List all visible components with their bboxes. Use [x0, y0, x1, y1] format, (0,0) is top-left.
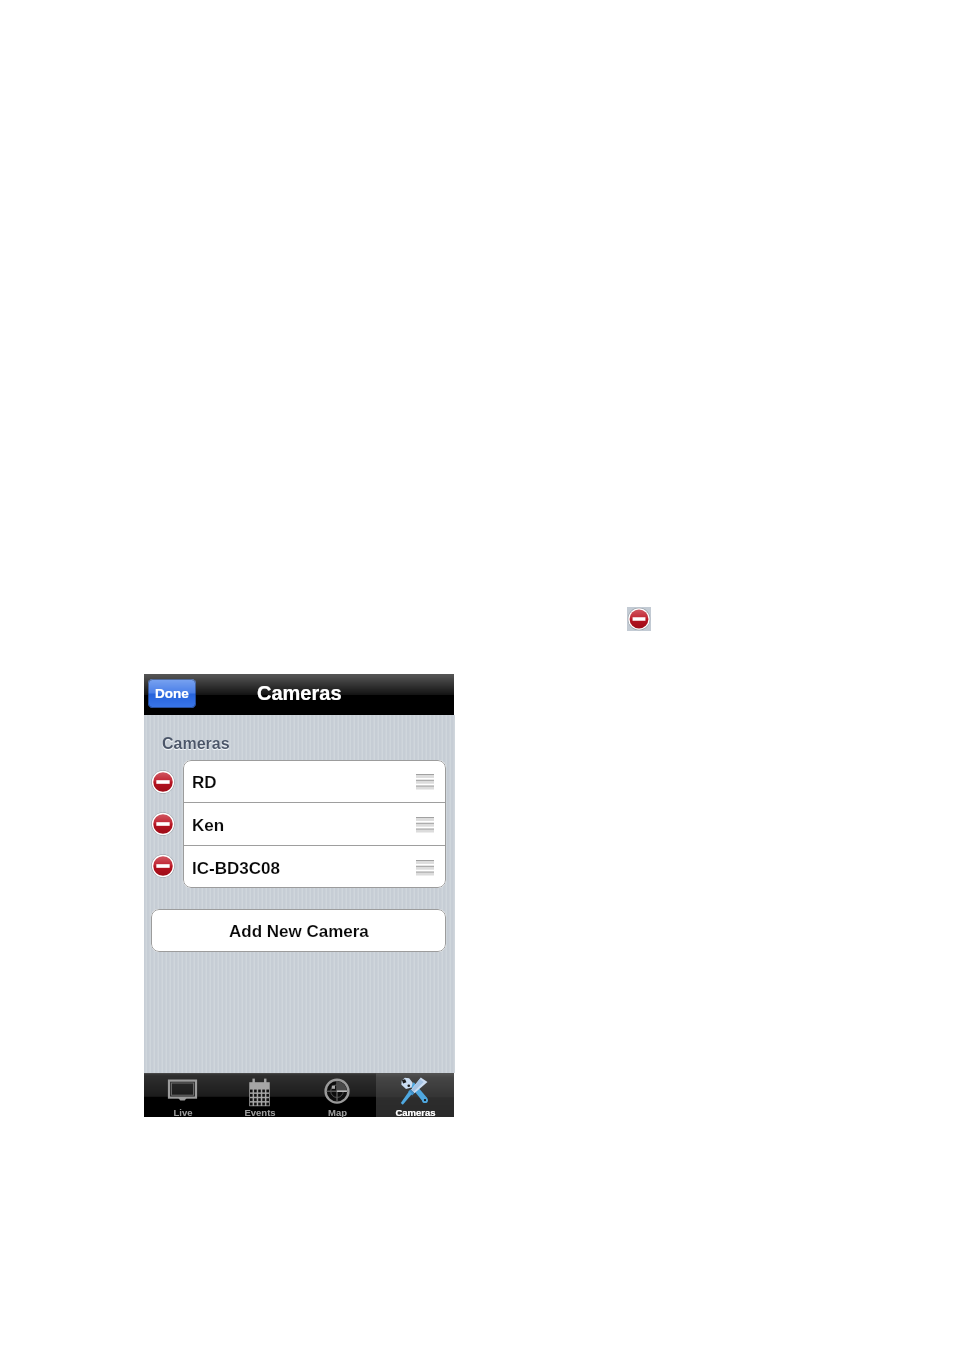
staticText: Events — [244, 1107, 276, 1118]
staticText: Cameras — [162, 735, 230, 753]
button[interactable]: Live — [144, 1073, 221, 1117]
staticText: Map — [328, 1107, 347, 1118]
button[interactable]: Ken — [183, 803, 446, 845]
button[interactable]: Delete — [627, 607, 651, 631]
staticText: Done — [155, 686, 189, 701]
button[interactable]: Map — [298, 1073, 376, 1117]
button[interactable]: Cameras — [376, 1073, 454, 1117]
staticText: Ken — [192, 816, 225, 835]
button[interactable]: RD — [183, 760, 446, 802]
button[interactable]: Delete camera — [151, 854, 175, 878]
button[interactable]: Delete camera — [151, 812, 175, 836]
button[interactable]: Events — [221, 1073, 298, 1117]
staticText: Add New Camera — [229, 922, 369, 941]
button[interactable]: Add New Camera — [151, 909, 446, 952]
staticText: Cameras — [257, 682, 342, 704]
staticText: Live — [173, 1107, 193, 1118]
staticText: RD — [192, 773, 217, 792]
staticText: Cameras — [162, 736, 230, 754]
staticText: IC-BD3C08 — [192, 859, 280, 878]
button[interactable]: Delete camera — [151, 770, 175, 794]
button[interactable]: IC-BD3C08 — [183, 846, 446, 888]
staticText: Cameras — [395, 1107, 436, 1118]
button[interactable]: Done — [148, 679, 196, 708]
